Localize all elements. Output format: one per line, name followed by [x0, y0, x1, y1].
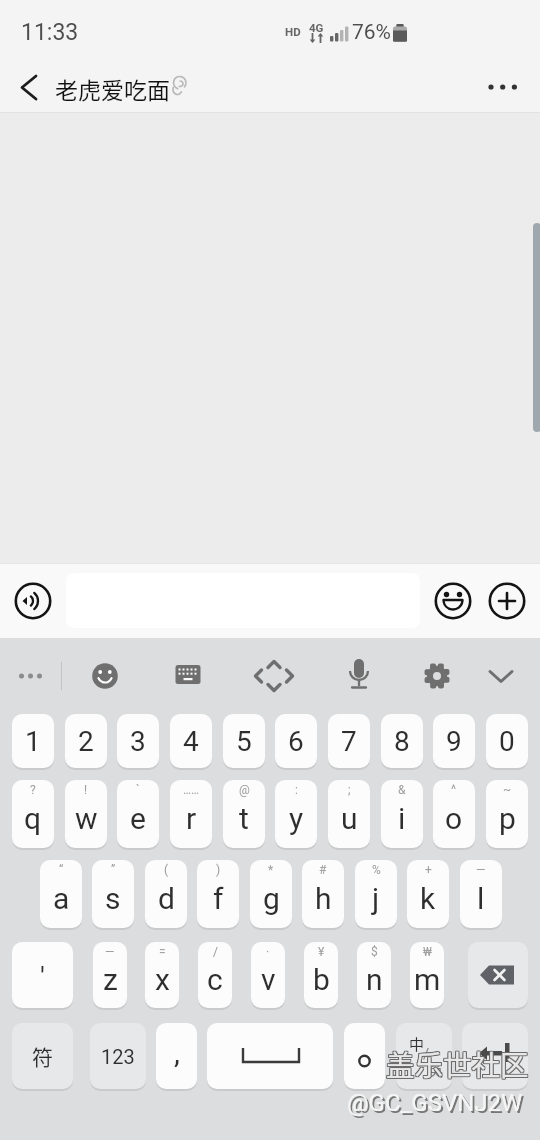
button[interactable]: x [145, 942, 179, 1008]
staticText: / [423, 1045, 430, 1063]
button[interactable]: 中 [396, 1023, 452, 1089]
button[interactable] [344, 1023, 385, 1089]
button[interactable]: w [65, 780, 107, 848]
button[interactable]: i [381, 780, 423, 848]
staticText: p [499, 801, 516, 836]
staticText: % [372, 863, 381, 877]
button[interactable]: z [93, 942, 127, 1008]
staticText: ¥ [318, 945, 325, 959]
button[interactable] [415, 654, 459, 698]
button[interactable]: l [460, 860, 502, 928]
button[interactable]: v [251, 942, 285, 1008]
button[interactable]: 6 [275, 714, 317, 768]
button[interactable] [166, 654, 210, 698]
button[interactable]: y [275, 780, 317, 848]
button[interactable]: 3 [117, 714, 159, 768]
button[interactable]: u [328, 780, 370, 848]
button[interactable] [480, 65, 526, 109]
staticText: * [268, 863, 274, 877]
staticText: 76% [352, 20, 391, 45]
staticText: @GC_GSVNJ2W [349, 1091, 525, 1119]
button[interactable] [479, 654, 523, 698]
staticText: 2 [78, 725, 94, 758]
button[interactable]: t [223, 780, 265, 848]
button[interactable] [462, 1023, 528, 1089]
button[interactable]: r [170, 780, 212, 848]
staticText: u [341, 801, 358, 836]
staticText: ” [111, 863, 116, 877]
button[interactable]: g [250, 860, 292, 928]
button[interactable]: 4 [170, 714, 212, 768]
staticText: 6 [288, 725, 304, 758]
staticText: b [313, 962, 330, 997]
staticText: — [105, 945, 115, 959]
button[interactable] [6, 66, 50, 110]
staticText: m [414, 962, 441, 997]
staticText: ! [84, 783, 88, 797]
button[interactable]: ' [12, 942, 73, 1008]
button[interactable]: k [407, 860, 449, 928]
staticText: i [398, 801, 406, 836]
button[interactable] [207, 1023, 333, 1089]
button[interactable]: a [40, 860, 82, 928]
button[interactable]: e [117, 780, 159, 848]
button[interactable]: 9 [433, 714, 475, 768]
staticText: 1 [25, 725, 41, 758]
staticText: g [263, 881, 280, 916]
button[interactable]: f [197, 860, 239, 928]
staticText: q [24, 801, 42, 836]
button[interactable]: m [410, 942, 444, 1008]
staticText: 盖乐世社区 [385, 1043, 528, 1084]
button[interactable]: h [302, 860, 344, 928]
staticText: 9 [446, 725, 462, 758]
staticText: + [425, 863, 432, 877]
button[interactable]: n [357, 942, 391, 1008]
staticText: 0 [499, 725, 515, 758]
staticText: ` [136, 783, 140, 797]
button[interactable]: 1 [12, 714, 54, 768]
button[interactable]: q [12, 780, 54, 848]
button[interactable] [83, 654, 127, 698]
button[interactable]: , [156, 1023, 197, 1089]
button[interactable]: 2 [65, 714, 107, 768]
staticText: w [75, 801, 98, 836]
staticText: , [174, 1035, 180, 1070]
staticText: ; [348, 783, 351, 797]
button[interactable]: s [92, 860, 134, 928]
button[interactable]: p [486, 780, 528, 848]
button[interactable] [468, 942, 528, 1008]
staticText: 盖乐世社区 [386, 1044, 529, 1085]
staticText: 盖乐世社区 [387, 1043, 530, 1084]
button[interactable]: d [145, 860, 187, 928]
button[interactable] [12, 580, 54, 622]
button[interactable]: 0 [486, 714, 528, 768]
button[interactable] [432, 580, 474, 622]
staticText: 盖乐世社区 [387, 1044, 530, 1085]
staticText: x [155, 962, 170, 997]
staticText: y [289, 801, 304, 836]
staticText: : [295, 783, 298, 797]
button[interactable] [252, 654, 296, 698]
staticText: @GC_GSVNJ2W [347, 1089, 523, 1117]
staticText: s [105, 881, 121, 916]
button[interactable] [8, 658, 52, 694]
button[interactable]: 符 [12, 1023, 73, 1089]
button[interactable]: c [198, 942, 232, 1008]
staticText: 盖乐世社区 [385, 1042, 528, 1083]
button[interactable] [486, 580, 528, 622]
button[interactable]: 7 [328, 714, 370, 768]
button[interactable]: o [433, 780, 475, 848]
button[interactable]: b [304, 942, 338, 1008]
button[interactable]: 5 [223, 714, 265, 768]
button[interactable]: 123 [90, 1023, 146, 1089]
button[interactable] [337, 654, 381, 698]
staticText: 7 [341, 725, 357, 758]
button[interactable]: 8 [381, 714, 423, 768]
staticText: 中 [409, 1033, 425, 1055]
staticText: “ [59, 863, 64, 877]
button[interactable]: j [355, 860, 397, 928]
staticText: / [213, 945, 218, 959]
staticText: 3 [130, 725, 146, 758]
staticText: …… [183, 783, 200, 797]
